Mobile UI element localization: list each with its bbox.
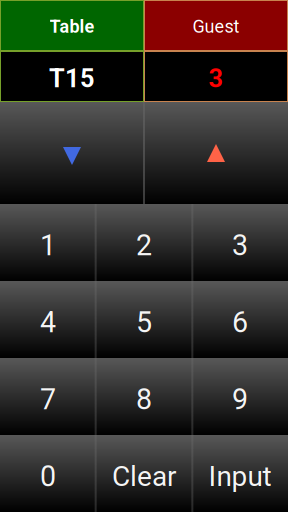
staticText: 5	[136, 306, 152, 339]
staticText: 0	[40, 460, 56, 493]
staticText: 9	[232, 383, 248, 416]
button[interactable]: 4	[0, 281, 96, 358]
staticText: Guest	[192, 16, 239, 37]
staticText: 4	[40, 306, 56, 339]
staticText: 6	[232, 306, 248, 339]
staticText: Clear	[112, 460, 176, 493]
button[interactable]: 1	[0, 204, 96, 281]
button[interactable]: 9	[192, 358, 288, 435]
button[interactable]: 3	[192, 204, 288, 281]
button[interactable]: Input	[192, 435, 288, 512]
staticText: T15	[49, 64, 95, 93]
staticText: Table	[49, 16, 94, 37]
button[interactable]: 7	[0, 358, 96, 435]
button[interactable]: 2	[96, 204, 192, 281]
staticText: 3	[208, 64, 223, 93]
button[interactable]: Decrease	[0, 102, 144, 204]
staticText: 1	[40, 229, 56, 262]
button[interactable]: Clear	[96, 435, 192, 512]
button[interactable]: Increase	[144, 102, 288, 204]
staticText: 7	[40, 383, 56, 416]
button[interactable]: 5	[96, 281, 192, 358]
button[interactable]: 8	[96, 358, 192, 435]
staticText: 2	[136, 229, 152, 262]
button[interactable]: 6	[192, 281, 288, 358]
button[interactable]: Guest	[144, 0, 288, 102]
staticText: 8	[136, 383, 152, 416]
button[interactable]: 0	[0, 435, 96, 512]
staticText: 3	[232, 229, 248, 262]
button[interactable]: Table	[0, 0, 144, 102]
staticText: Input	[208, 460, 271, 493]
